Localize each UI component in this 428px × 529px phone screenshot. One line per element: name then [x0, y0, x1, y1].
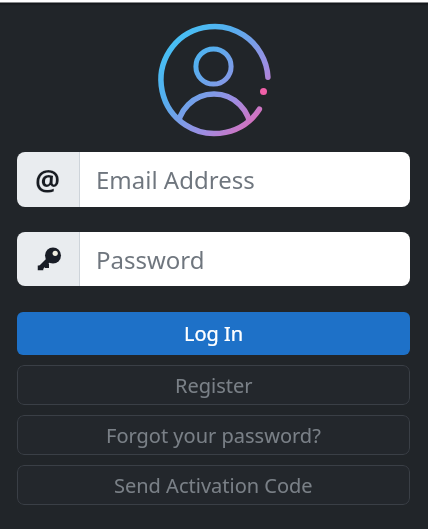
- button[interactable]: Log In: [17, 312, 410, 355]
- staticText: Register: [175, 372, 253, 399]
- button[interactable]: Forgot your password?: [17, 415, 410, 455]
- staticText: Password: [96, 243, 205, 276]
- staticText: Email Address: [96, 163, 255, 196]
- button[interactable]: Send Activation Code: [17, 465, 410, 505]
- button[interactable]: Register: [17, 365, 410, 405]
- staticText: Send Activation Code: [114, 472, 313, 499]
- staticText: Forgot your password?: [106, 422, 321, 449]
- staticText: @: [35, 161, 61, 199]
- button[interactable]: Password: [17, 232, 410, 286]
- button[interactable]: @: [17, 152, 410, 207]
- staticText: Log In: [184, 320, 244, 347]
